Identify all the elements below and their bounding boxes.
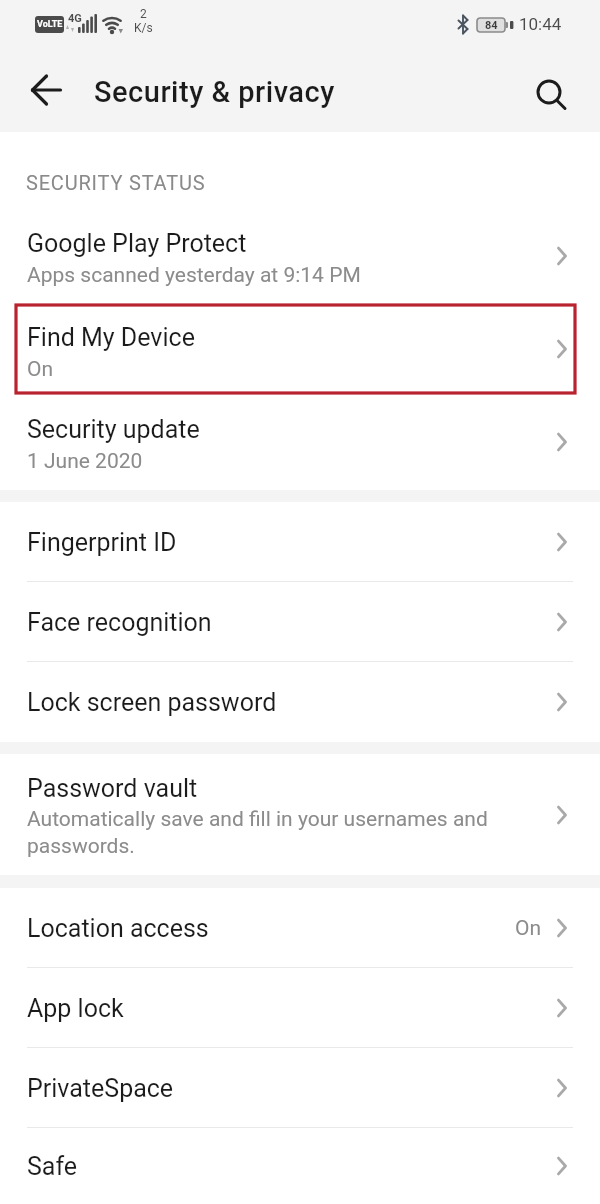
staticText: Security & privacy (94, 75, 335, 109)
button[interactable]: Find My Device (0, 304, 600, 394)
staticText: On (515, 916, 542, 941)
staticText: 10:44 (519, 14, 562, 34)
staticText: Security update (27, 415, 200, 444)
staticText: K/s (134, 21, 153, 35)
staticText: Password vault (27, 774, 198, 803)
button[interactable]: Fingerprint ID (0, 502, 600, 582)
staticText: Face recognition (27, 608, 212, 637)
staticText: Google Play Protect (27, 229, 247, 258)
button[interactable]: Face recognition (0, 582, 600, 662)
button[interactable]: PrivateSpace (0, 1048, 600, 1128)
button[interactable] (530, 72, 574, 116)
staticText: Find My Device (27, 323, 195, 352)
staticText: 2 (140, 7, 147, 21)
staticText: SECURITY STATUS (26, 171, 206, 194)
button[interactable]: Lock screen password (0, 662, 600, 742)
button[interactable]: Location access (0, 888, 600, 968)
staticText: On (27, 357, 54, 382)
staticText: Safe (27, 1152, 78, 1181)
staticText: VoLTE (37, 19, 63, 30)
staticText: 1 June 2020 (27, 449, 143, 474)
staticText: Apps scanned yesterday at 9:14 PM (27, 263, 361, 288)
button[interactable]: App lock (0, 968, 600, 1048)
button[interactable]: Safe (0, 1128, 600, 1204)
staticText: Fingerprint ID (27, 528, 177, 557)
staticText: Lock screen password (27, 688, 277, 717)
button[interactable] (20, 69, 72, 111)
staticText: PrivateSpace (27, 1074, 174, 1103)
staticText: Automatically save and fill in your user… (27, 807, 530, 858)
staticText: Location access (27, 914, 209, 943)
staticText: App lock (27, 994, 124, 1023)
staticText: 84 (485, 19, 498, 32)
button[interactable]: Google Play Protect (0, 208, 600, 304)
button[interactable]: Security update (0, 394, 600, 490)
staticText: 4G (68, 12, 82, 25)
button[interactable]: Password vault (0, 754, 600, 875)
